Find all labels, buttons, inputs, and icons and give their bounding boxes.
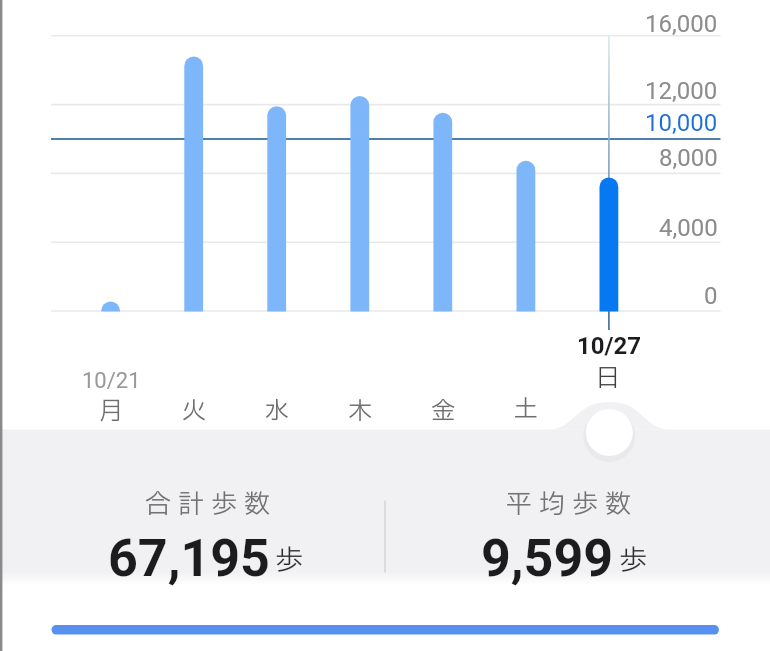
staticText: 日 (596, 361, 620, 393)
staticText: 4,000 (659, 214, 718, 242)
button[interactable]: 火 (154, 394, 234, 428)
staticText: 歩 (619, 540, 648, 582)
button[interactable]: 土 (486, 392, 566, 426)
button[interactable]: 木 (320, 394, 400, 428)
staticText: 歩 (275, 540, 304, 582)
button[interactable]: 67,195 (56, 526, 356, 590)
staticText: 10,000 (645, 109, 718, 137)
staticText: 木 (348, 394, 372, 428)
staticText: 合計歩数 (145, 485, 278, 517)
button[interactable] (51, 622, 719, 638)
staticText: 土 (514, 392, 538, 426)
button[interactable]: 日 (568, 361, 648, 393)
staticText: 10/21 (82, 368, 141, 394)
staticText: 16,000 (645, 10, 718, 38)
button[interactable]: 水 (237, 394, 317, 428)
staticText: 0 (704, 282, 718, 310)
staticText: 平均歩数 (506, 485, 639, 517)
button[interactable]: 9,599 (414, 526, 714, 590)
staticText: 水 (265, 394, 289, 428)
staticText: 火 (182, 394, 206, 428)
button[interactable]: 月 (71, 394, 151, 428)
button[interactable] (585, 409, 633, 457)
staticText: 10/27 (577, 332, 642, 360)
staticText: 9,599 (481, 528, 614, 589)
staticText: 8,000 (659, 144, 718, 172)
staticText: 12,000 (645, 77, 718, 105)
button[interactable]: 金 (403, 394, 483, 428)
staticText: 金 (431, 394, 455, 428)
staticText: 67,195 (108, 528, 270, 589)
staticText: 月 (99, 394, 123, 428)
